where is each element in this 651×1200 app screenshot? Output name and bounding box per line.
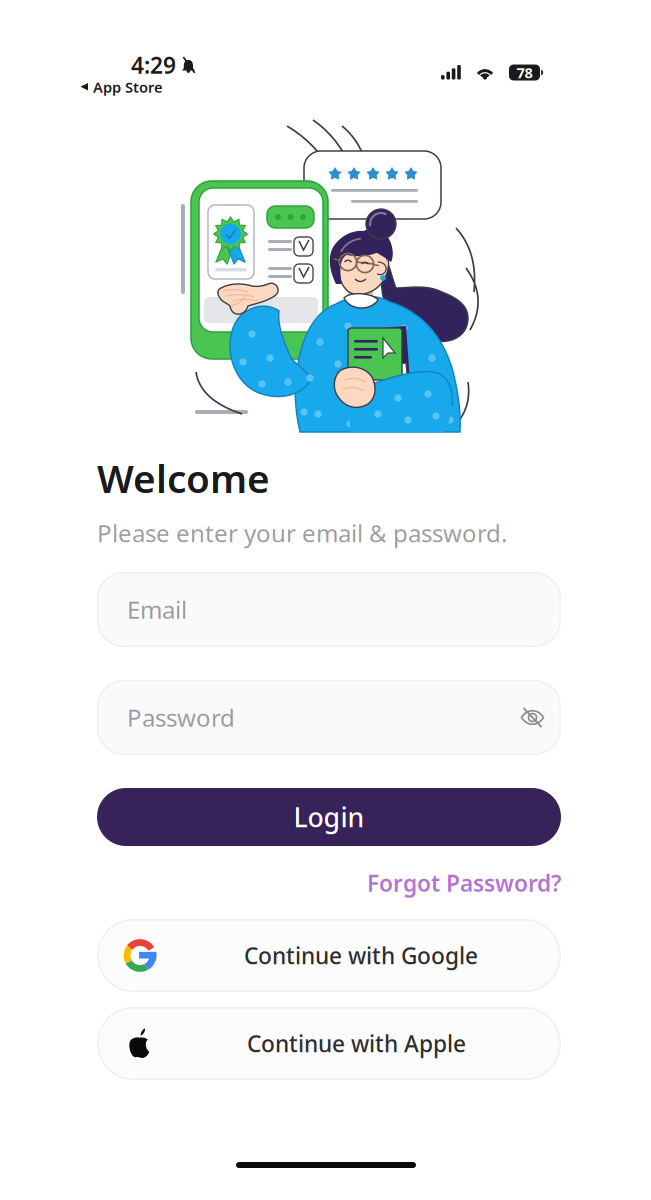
staticText: Forgot Password? <box>367 868 561 898</box>
staticText: Welcome <box>97 452 270 504</box>
staticText: Please enter your email & password. <box>97 517 507 549</box>
staticText: Email <box>127 594 187 625</box>
staticText: 78 <box>516 63 532 82</box>
button[interactable]: Continue with Apple <box>97 1007 561 1080</box>
staticText: Password <box>127 702 235 733</box>
staticText: App Store <box>93 77 163 97</box>
button[interactable]: Continue with Google <box>97 919 561 992</box>
button[interactable]: Forgot Password? <box>367 868 561 898</box>
staticText: Login <box>293 799 364 835</box>
staticText: Continue with Apple <box>247 1028 466 1058</box>
staticText: 4:29 <box>131 50 176 80</box>
button[interactable]: Login <box>97 788 561 846</box>
staticText: Continue with Google <box>244 940 478 970</box>
